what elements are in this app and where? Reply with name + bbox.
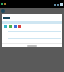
button[interactable]: Profile — [1, 9, 5, 13]
button[interactable] — [27, 45, 37, 47]
